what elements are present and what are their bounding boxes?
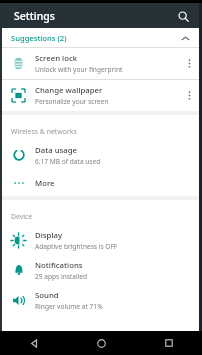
- button[interactable]: Recent apps: [135, 331, 202, 355]
- button[interactable]: Home: [68, 331, 135, 355]
- button[interactable]: More options: [179, 80, 199, 111]
- button[interactable]: Change wallpaper: [2, 80, 199, 111]
- button[interactable]: Search: [173, 6, 193, 26]
- staticText: Screen lock: [35, 53, 78, 64]
- staticText: Data usage: [35, 145, 78, 156]
- button[interactable]: Suggestions (2): [2, 28, 199, 47]
- other: Collapse suggestions: [178, 31, 192, 45]
- staticText: Wireless & networks: [11, 127, 77, 136]
- button[interactable]: More: [2, 170, 199, 196]
- staticText: Adaptive brightness is OFF: [35, 242, 118, 251]
- staticText: Change wallpaper: [35, 85, 103, 96]
- staticText: Suggestions (2): [11, 33, 67, 43]
- staticText: Unlock with your fingerprint: [35, 65, 123, 74]
- staticText: Ringer volume at 71%: [35, 302, 103, 311]
- button[interactable]: More options: [179, 48, 199, 79]
- button[interactable]: Data usage: [2, 140, 199, 170]
- button[interactable]: Sound: [2, 285, 199, 315]
- staticText: Personalize your screen: [35, 97, 109, 106]
- staticText: Device: [11, 212, 33, 221]
- staticText: 6.17 MB of data used: [35, 157, 101, 166]
- button[interactable]: Notifications: [2, 255, 199, 285]
- staticText: Display: [35, 230, 63, 241]
- button[interactable]: Back: [0, 331, 68, 355]
- staticText: Sound: [35, 290, 59, 301]
- button[interactable]: Display: [2, 225, 199, 255]
- button[interactable]: Screen lock: [2, 48, 199, 79]
- staticText: Notifications: [35, 260, 83, 271]
- staticText: 29 apps installed: [35, 272, 88, 281]
- staticText: Settings: [14, 9, 55, 23]
- staticText: More: [35, 178, 55, 189]
